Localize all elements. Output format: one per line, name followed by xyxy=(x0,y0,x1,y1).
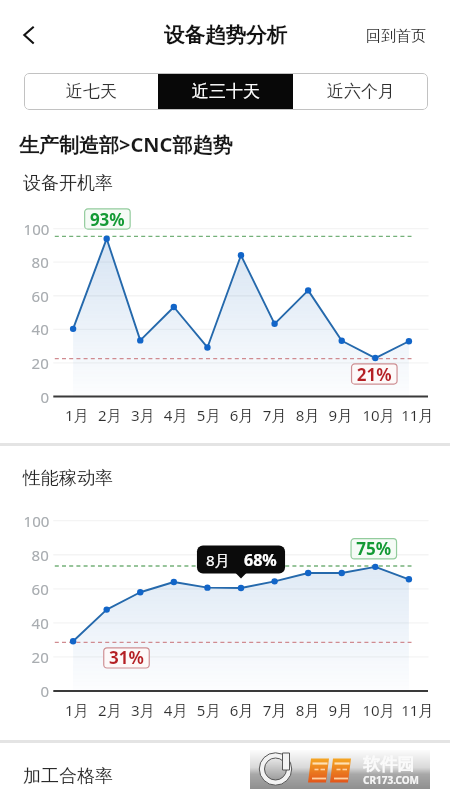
staticText: 近六个月 xyxy=(327,81,395,102)
staticText: 加工合格率 xyxy=(23,765,113,788)
button[interactable]: Back xyxy=(11,16,51,56)
staticText: 近三十天 xyxy=(192,81,260,102)
staticText: 回到首页 xyxy=(366,27,426,46)
button[interactable]: 近三十天 xyxy=(158,73,293,110)
staticText: 近七天 xyxy=(66,81,117,102)
button[interactable]: 回到首页 xyxy=(360,23,432,50)
button[interactable]: 近七天 xyxy=(24,73,158,110)
button[interactable]: 近六个月 xyxy=(293,73,428,110)
staticText: 生产制造部>CNC部趋势 xyxy=(19,131,233,158)
staticText: 性能稼动率 xyxy=(23,467,113,490)
staticText: 设备开机率 xyxy=(23,172,113,195)
staticText: 设备趋势分析 xyxy=(164,22,287,48)
